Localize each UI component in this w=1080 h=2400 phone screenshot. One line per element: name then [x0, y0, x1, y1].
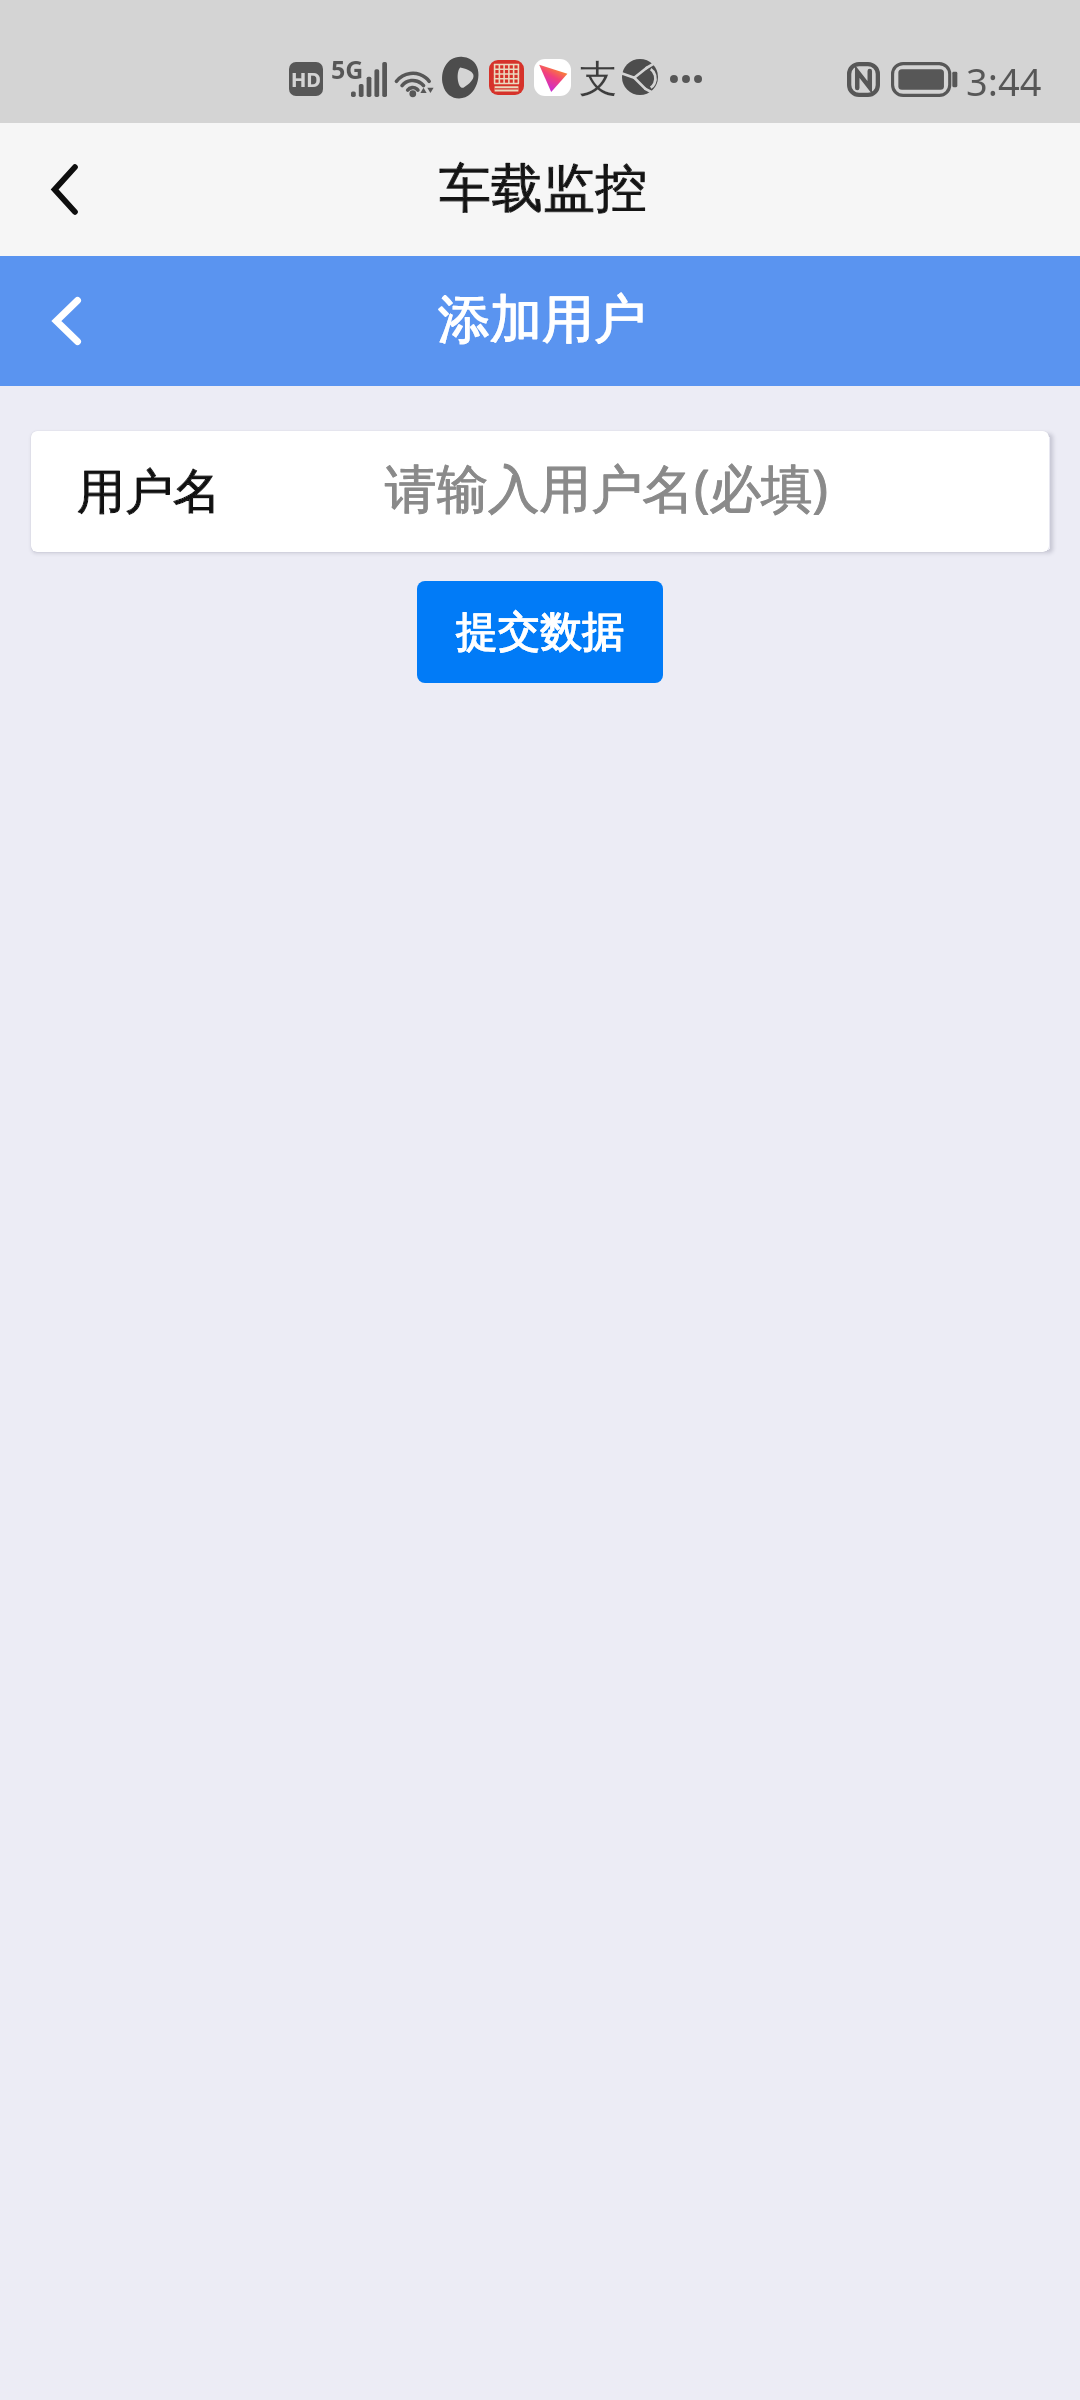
staticText: 用户名 — [77, 462, 221, 522]
staticText: HD — [291, 66, 321, 93]
button[interactable]: 提交数据 — [417, 581, 663, 683]
staticText: 请输入用户名(必填) — [385, 452, 828, 522]
button[interactable]: 用户名 — [31, 431, 1049, 552]
staticText: 车载监控 — [439, 156, 647, 222]
staticText: 添加用户 — [438, 287, 646, 353]
button[interactable]: Back — [0, 256, 131, 386]
staticText: 5G — [331, 52, 364, 86]
staticText: 车载监控 — [439, 156, 647, 222]
staticText: 提交数据 — [456, 606, 624, 659]
staticText: 添加用户 — [438, 287, 646, 353]
staticText: 提交数据 — [456, 606, 624, 659]
staticText: 支 — [579, 55, 617, 103]
staticText: 请输入用户名(必填) — [385, 452, 828, 522]
staticText: 3:44 — [966, 55, 1042, 107]
staticText: 用户名 — [77, 462, 221, 522]
button[interactable]: Back — [0, 123, 128, 256]
